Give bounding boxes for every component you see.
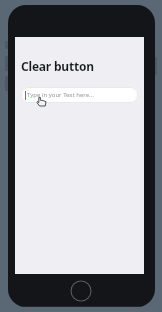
button[interactable]: Type in your Text here... <box>21 87 138 103</box>
button[interactable]: Home <box>70 280 92 302</box>
staticText: Type in your Text here... <box>27 91 94 99</box>
staticText: Clear button example <box>21 58 140 74</box>
